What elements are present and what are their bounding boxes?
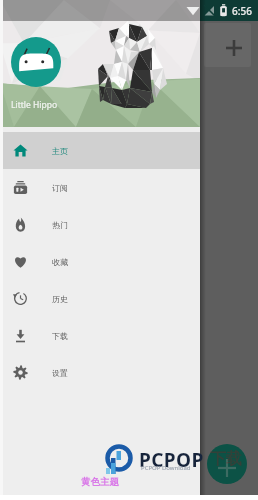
- staticText: 收藏: [52, 257, 68, 267]
- staticText: 热门: [52, 220, 68, 230]
- staticText: PCPOP: [139, 447, 204, 473]
- staticText: 下载: [210, 449, 242, 469]
- staticText: 历史: [52, 294, 68, 304]
- button[interactable]: 历史: [0, 280, 200, 317]
- button[interactable]: Add: [204, 23, 251, 67]
- staticText: 主页: [52, 146, 68, 156]
- staticText: 订阅: [52, 183, 68, 193]
- staticText: 设置: [52, 368, 68, 378]
- button[interactable]: 主页: [0, 132, 200, 169]
- button[interactable]: 热门: [0, 206, 200, 243]
- button[interactable]: 设置: [0, 354, 200, 391]
- button[interactable]: 收藏: [0, 243, 200, 280]
- button[interactable]: 订阅: [0, 169, 200, 206]
- button[interactable]: Create: [207, 444, 247, 484]
- staticText: Little Hippo: [11, 99, 58, 111]
- staticText: 下载: [52, 331, 68, 341]
- staticText: PCPOP Download: [141, 464, 191, 472]
- staticText: 黄色主题: [81, 476, 119, 488]
- button[interactable]: 下载: [0, 317, 200, 354]
- staticText: 6:56: [232, 4, 252, 18]
